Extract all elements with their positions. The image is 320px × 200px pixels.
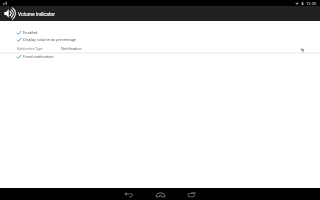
button[interactable]: Back xyxy=(116,188,140,200)
button[interactable]: Volume Indicator xyxy=(2,6,19,21)
staticText: Enabled xyxy=(23,30,38,35)
button[interactable]: Home xyxy=(148,188,172,200)
staticText: Notification Type xyxy=(17,47,43,51)
button[interactable]: Fixed notification xyxy=(0,53,320,60)
staticText: Volume Indicator xyxy=(18,11,55,17)
staticText: Notification xyxy=(61,46,82,51)
button[interactable]: Recent apps xyxy=(179,188,203,200)
staticText: 12:35 xyxy=(306,1,317,6)
button[interactable]: Display volume as percentage xyxy=(0,36,320,43)
staticText: Display volume as percentage xyxy=(23,37,77,42)
staticText: Fixed notification xyxy=(23,54,54,59)
button[interactable]: Enabled xyxy=(0,29,320,36)
button[interactable]: Notification Type xyxy=(0,45,320,54)
